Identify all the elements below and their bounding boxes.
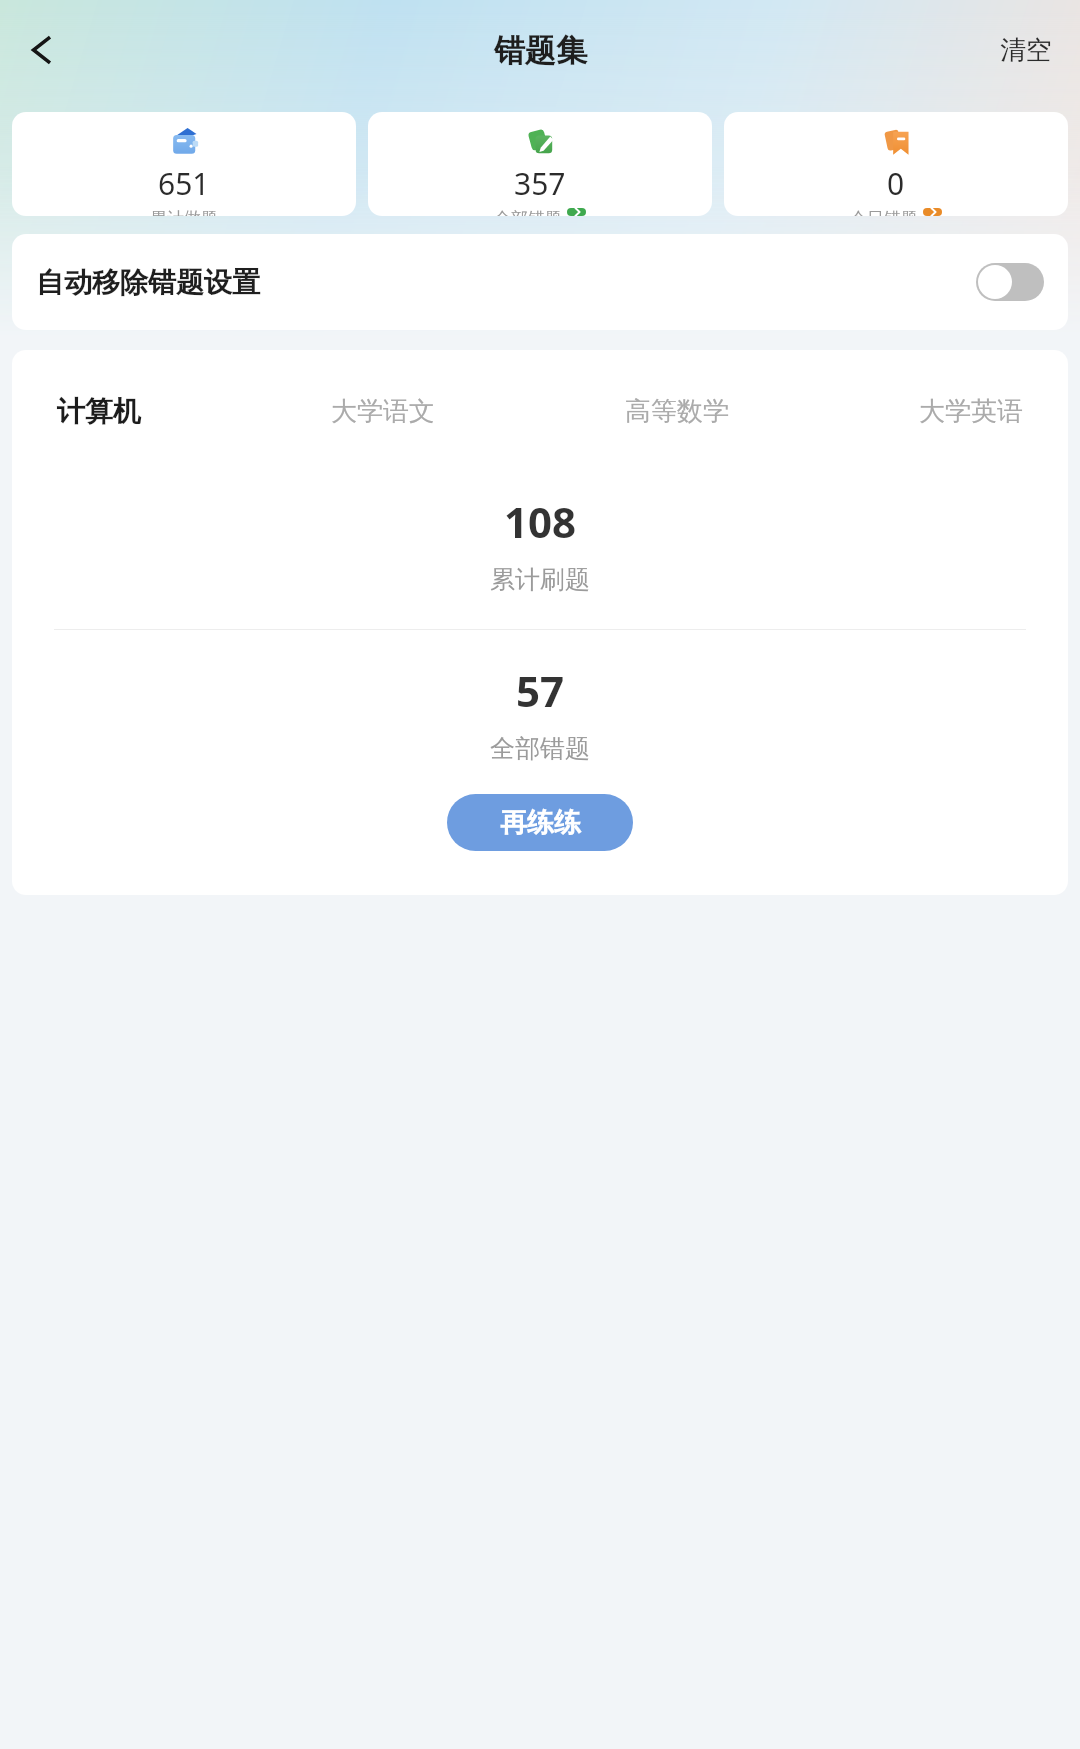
button[interactable]: 高等数学: [622, 389, 732, 434]
button[interactable]: 0: [724, 112, 1068, 216]
staticText: 再练练: [500, 806, 581, 840]
button[interactable]: 再练练: [447, 794, 633, 851]
staticText: 全部错题: [490, 733, 590, 764]
staticText: 清空: [1000, 34, 1052, 67]
button[interactable]: 大学英语: [916, 389, 1026, 434]
staticText: 累计做题: [150, 208, 218, 216]
staticText: 自动移除错题设置: [36, 265, 260, 300]
button[interactable]: Back: [12, 19, 74, 81]
staticText: 57: [516, 662, 565, 719]
button[interactable]: 清空: [992, 24, 1060, 77]
staticText: 0: [887, 163, 905, 204]
staticText: 357: [514, 163, 566, 204]
staticText: 108: [504, 493, 577, 550]
staticText: 累计刷题: [490, 564, 590, 595]
button[interactable]: 大学语文: [328, 389, 438, 434]
button[interactable]: 自动移除错题设置: [12, 234, 1068, 330]
staticText: 大学语文: [331, 395, 435, 428]
button[interactable]: 计算机: [54, 388, 144, 435]
staticText: 计算机: [57, 394, 141, 429]
staticText: 全部错题: [494, 208, 562, 216]
staticText: 大学英语: [919, 395, 1023, 428]
button[interactable]: 651: [12, 112, 356, 216]
staticText: 651: [158, 163, 210, 204]
staticText: 高等数学: [625, 395, 729, 428]
button[interactable]: 357: [368, 112, 712, 216]
staticText: 错题集: [494, 31, 587, 70]
staticText: 今日错题: [850, 208, 918, 216]
